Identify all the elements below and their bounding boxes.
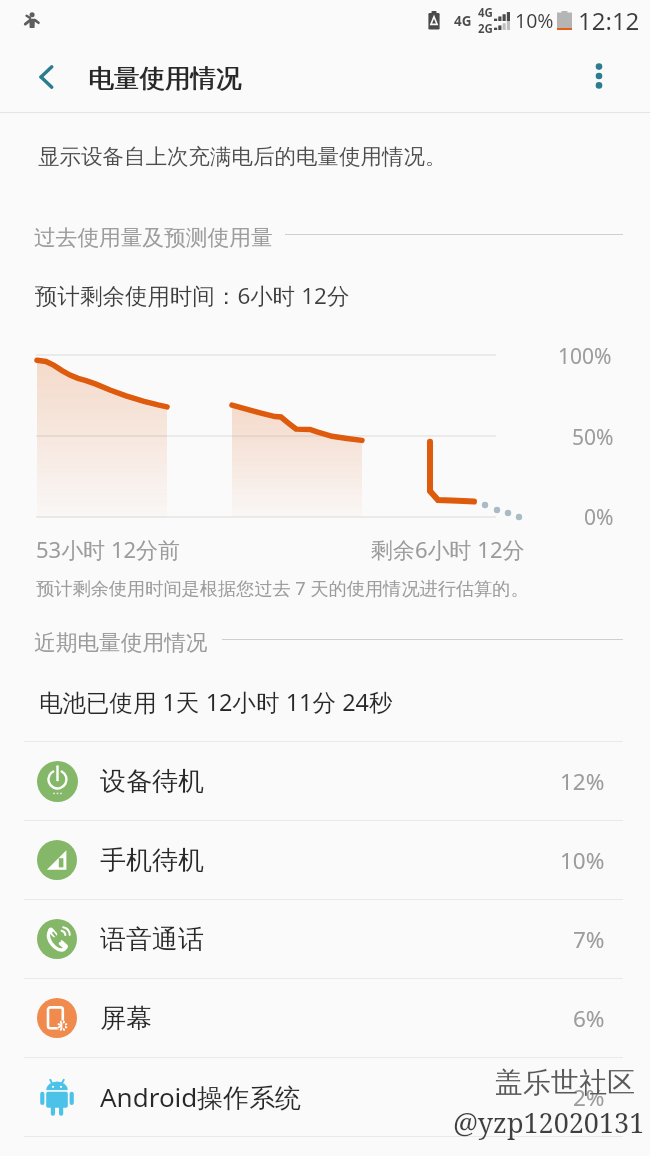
- staticText: 100%: [558, 342, 612, 371]
- button[interactable]: 手机待机: [0, 821, 650, 899]
- staticText: 53小时 12分前: [36, 534, 181, 564]
- button[interactable]: 设备待机: [0, 742, 650, 820]
- staticText: 10%: [560, 845, 605, 876]
- button[interactable]: Back: [18, 48, 76, 106]
- staticText: 4G: [478, 5, 493, 21]
- staticText: 预计剩余使用时间：6小时 12分: [35, 280, 350, 311]
- button[interactable]: 语音通话: [0, 900, 650, 978]
- staticText: 近期电量使用情况: [34, 629, 208, 656]
- staticText: 手机待机: [100, 844, 204, 877]
- staticText: 过去使用量及预测使用量: [34, 224, 273, 251]
- staticText: @yzp12020131: [453, 1104, 645, 1141]
- staticText: 语音通话: [100, 923, 204, 956]
- staticText: 剩余6小时 12分: [371, 534, 525, 564]
- staticText: 4G: [454, 12, 472, 30]
- staticText: 盖乐世社区: [495, 1065, 635, 1100]
- staticText: 0%: [584, 503, 614, 532]
- staticText: 屏幕: [100, 1002, 152, 1035]
- button[interactable]: More options: [571, 48, 627, 104]
- staticText: 电量使用情况: [89, 62, 242, 94]
- staticText: 显示设备自上次充满电后的电量使用情况。: [38, 143, 447, 170]
- staticText: 2G: [478, 21, 493, 37]
- staticText: 电量使用情况: [88, 62, 241, 94]
- staticText: 12%: [560, 766, 605, 797]
- staticText: Android操作系统: [100, 1079, 302, 1115]
- staticText: 12:12: [578, 4, 640, 37]
- staticText: 50%: [572, 423, 614, 452]
- staticText: 7%: [573, 924, 605, 955]
- staticText: 预计剩余使用时间是根据您过去 7 天的使用情况进行估算的。: [36, 576, 529, 601]
- button[interactable]: Android操作系统: [0, 1058, 650, 1136]
- staticText: 设备待机: [100, 765, 204, 798]
- staticText: 2%: [573, 1082, 605, 1113]
- button[interactable]: 屏幕: [0, 979, 650, 1057]
- staticText: 电池已使用 1天 12小时 11分 24秒: [39, 686, 393, 718]
- staticText: 6%: [573, 1003, 605, 1034]
- staticText: 10%: [515, 7, 554, 34]
